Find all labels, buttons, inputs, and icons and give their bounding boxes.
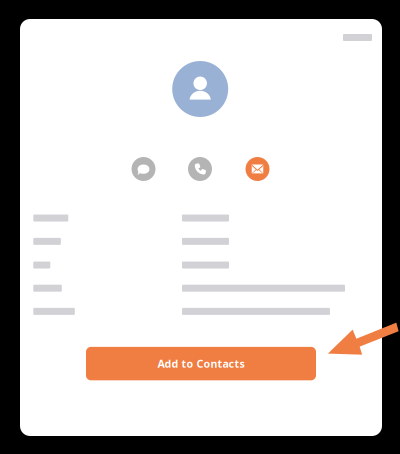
button[interactable]: Message (131, 157, 155, 181)
button[interactable]: Call (188, 157, 212, 181)
button[interactable]: Mail (245, 157, 269, 181)
staticText: Add to Contacts (157, 356, 244, 371)
button[interactable]: Add to Contacts (86, 347, 316, 380)
